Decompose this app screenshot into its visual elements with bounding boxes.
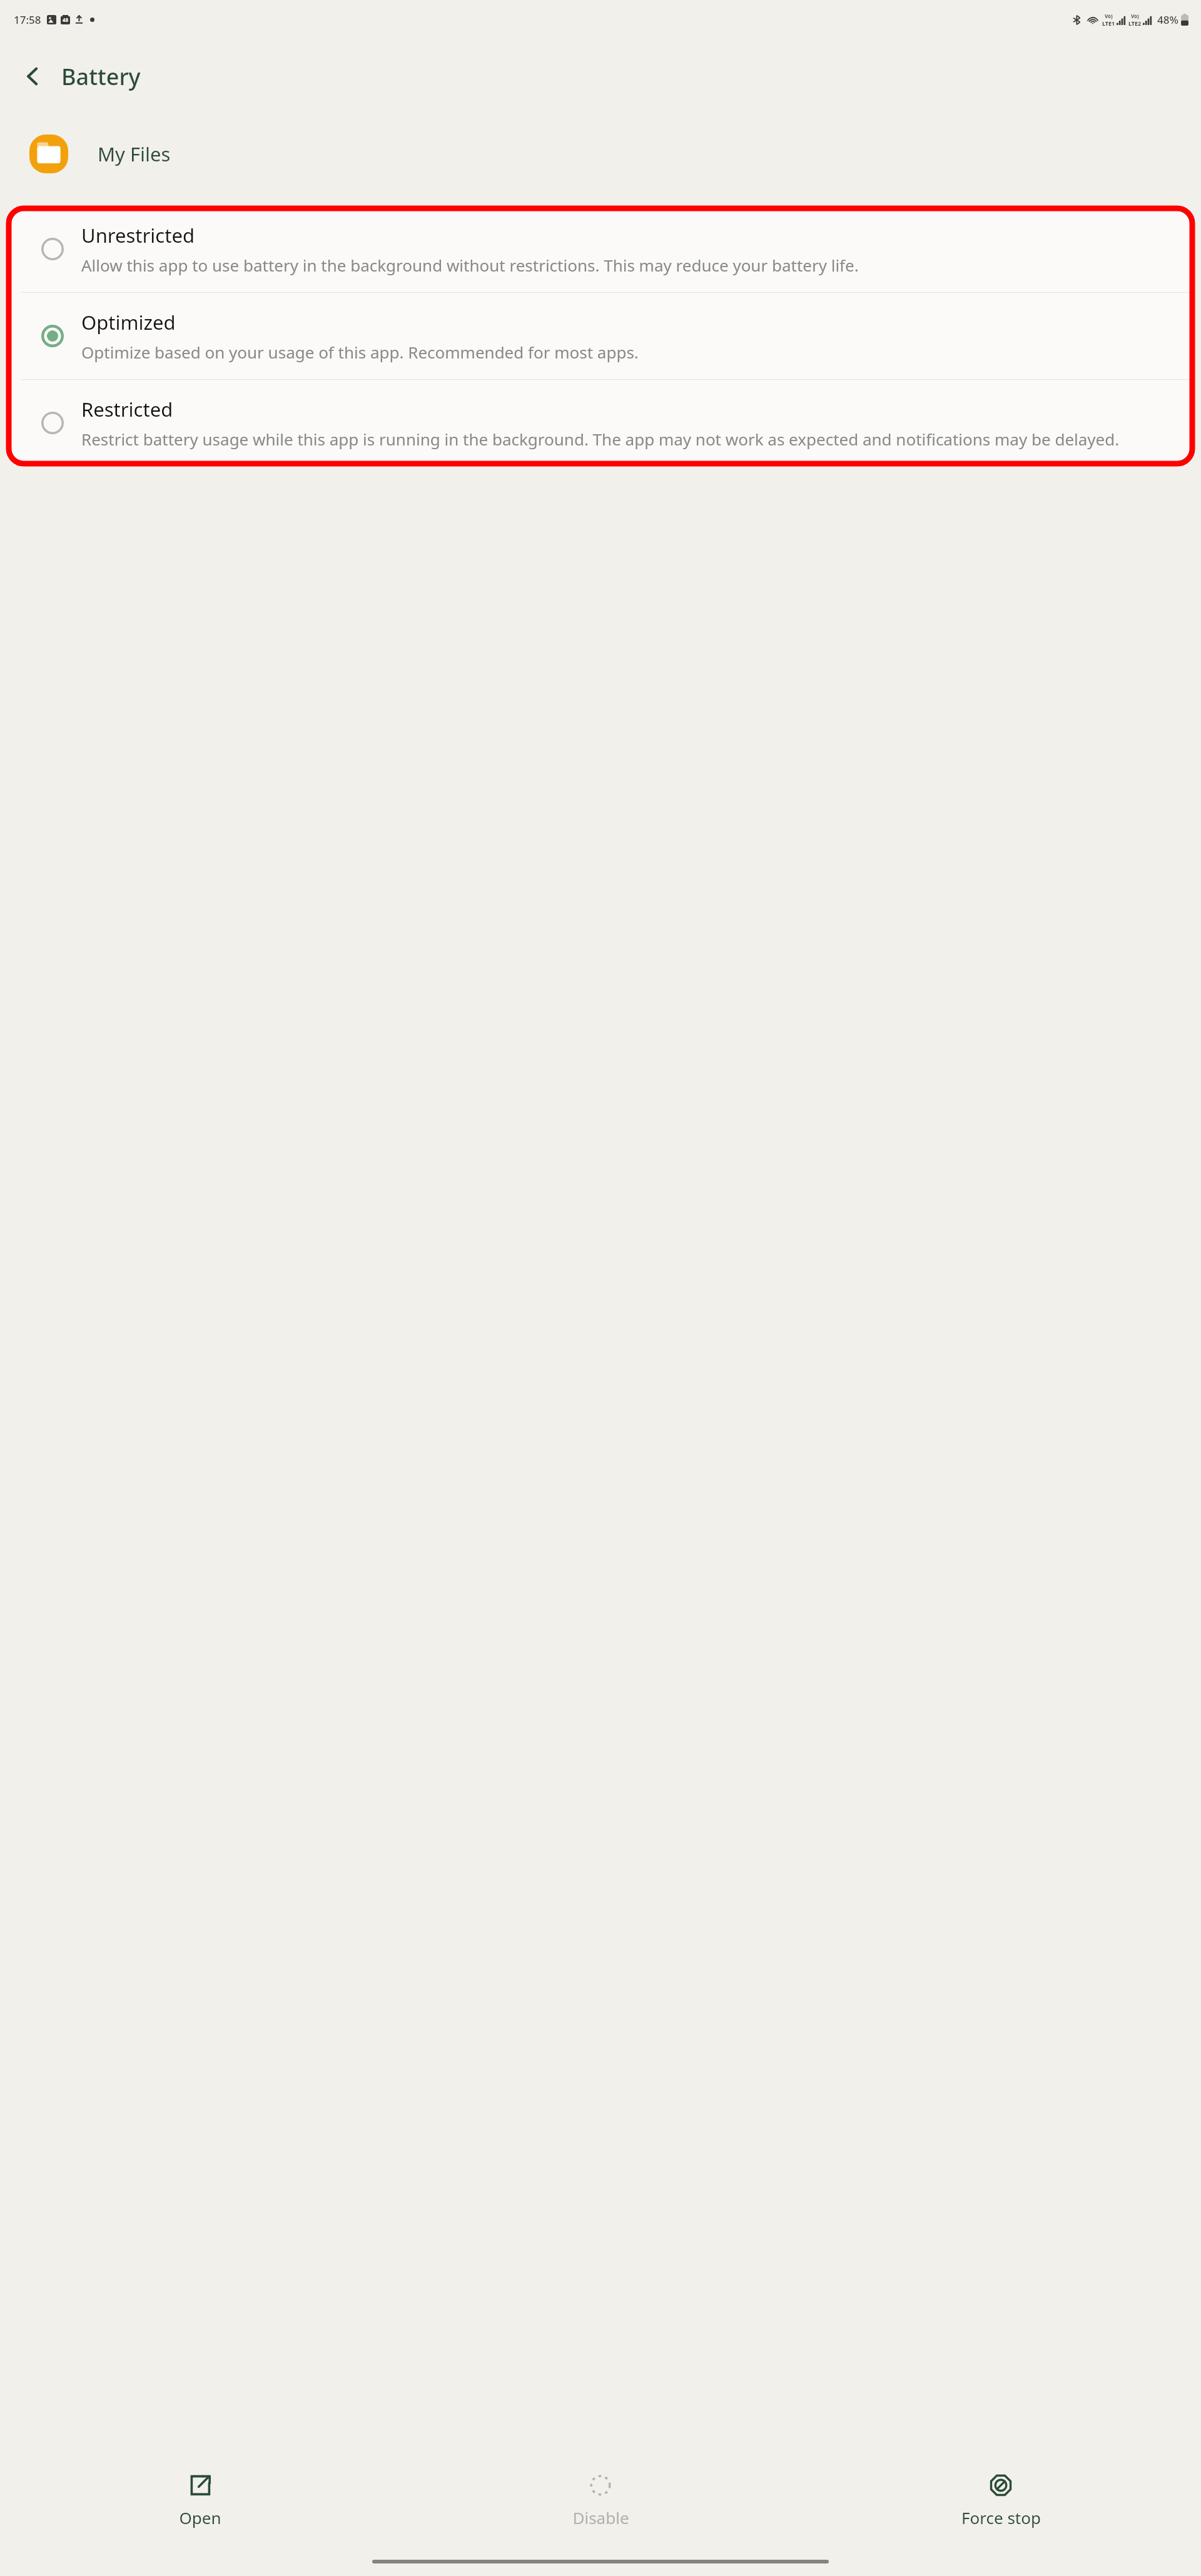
- staticText: Battery: [61, 61, 141, 92]
- staticText: Force stop: [961, 2507, 1041, 2528]
- staticText: Open: [179, 2507, 221, 2528]
- staticText: Disable: [572, 2507, 629, 2528]
- staticText: Vo): [1131, 13, 1139, 19]
- button[interactable]: Open: [0, 2453, 400, 2547]
- button[interactable]: Back: [16, 60, 49, 93]
- staticText: LTE2: [1128, 19, 1142, 27]
- staticText: 17:58: [14, 13, 41, 27]
- staticText: Restrict battery usage while this app is…: [81, 428, 1120, 450]
- staticText: Optimized: [81, 309, 176, 335]
- staticText: 48: [63, 16, 69, 23]
- staticText: 48%: [1157, 13, 1178, 27]
- staticText: Optimize based on your usage of this app…: [81, 341, 639, 363]
- button[interactable]: Restricted: [6, 380, 1195, 466]
- staticText: My Files: [98, 141, 171, 167]
- button[interactable]: Unrestricted: [6, 206, 1195, 292]
- staticText: Vo): [1105, 13, 1113, 19]
- button[interactable]: Force stop: [801, 2453, 1201, 2547]
- button[interactable]: Disable: [400, 2453, 801, 2547]
- button[interactable]: Optimized: [6, 293, 1195, 379]
- staticText: LTE1: [1102, 19, 1115, 27]
- staticText: Allow this app to use battery in the bac…: [81, 254, 859, 276]
- staticText: Restricted: [81, 396, 173, 422]
- staticText: Unrestricted: [81, 222, 195, 248]
